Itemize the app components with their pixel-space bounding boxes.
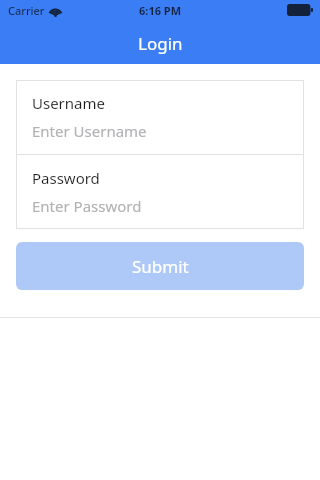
other: Battery full bbox=[287, 4, 313, 16]
staticText: Username bbox=[32, 93, 105, 113]
staticText: Submit bbox=[132, 255, 189, 278]
other: Wi-Fi signal bbox=[49, 4, 62, 17]
staticText: Login bbox=[138, 32, 183, 55]
staticText: Enter Username bbox=[32, 121, 147, 141]
staticText: 6:16 PM bbox=[139, 3, 182, 18]
button[interactable]: Username bbox=[16, 80, 304, 154]
button[interactable]: Submit bbox=[16, 242, 304, 290]
staticText: Password bbox=[32, 168, 100, 188]
staticText: Enter Password bbox=[32, 196, 142, 216]
button[interactable]: Password bbox=[16, 155, 304, 229]
staticText: Carrier bbox=[8, 3, 45, 18]
